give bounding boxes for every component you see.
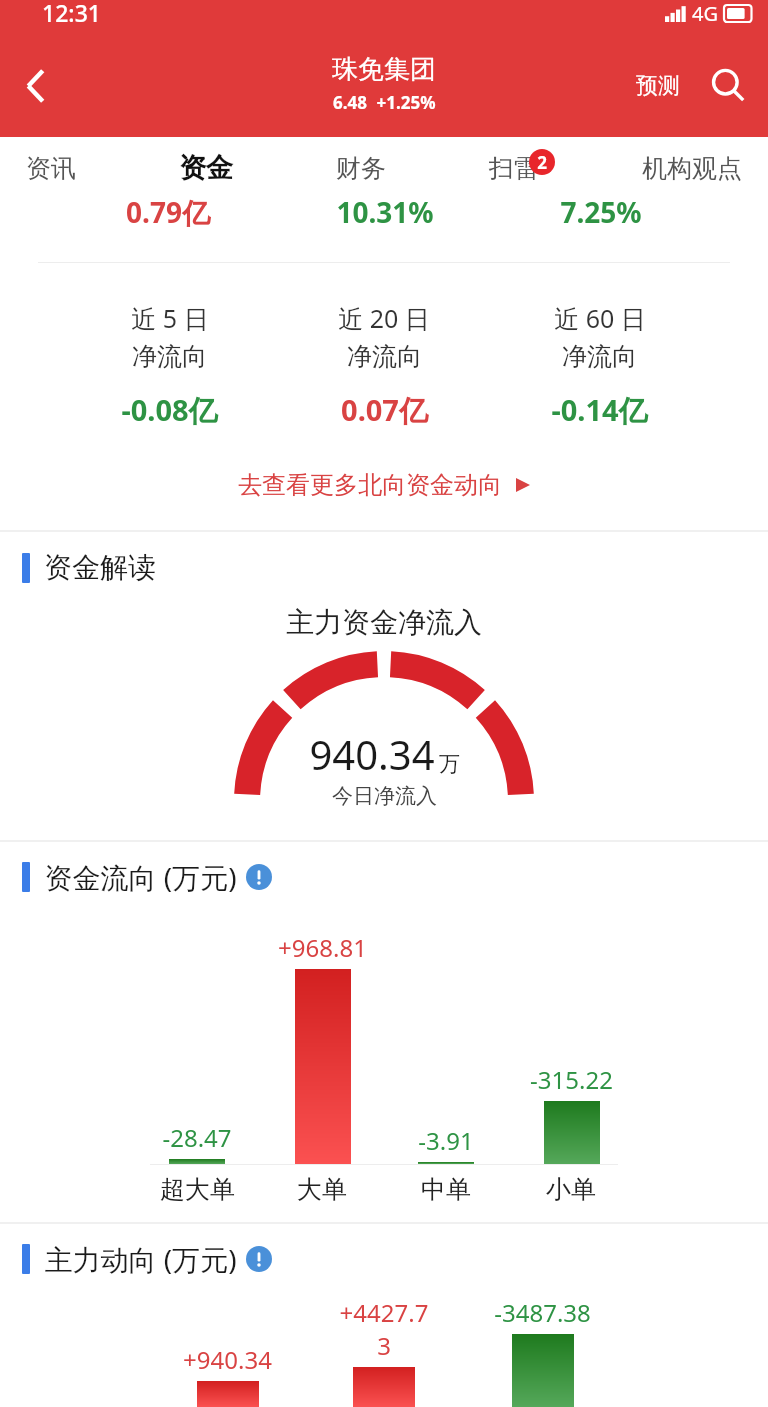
staticText: +968.81	[278, 931, 367, 964]
button[interactable]: +940.34	[176, 1296, 278, 1407]
staticText: 0.07亿	[341, 390, 428, 430]
staticText: 今日净流入	[332, 783, 437, 809]
staticText: 6.48	[333, 91, 367, 114]
staticText: -0.08亿	[121, 390, 218, 430]
staticText: 近 20 日	[338, 301, 430, 335]
staticText: 小单	[546, 1174, 596, 1205]
staticText: 去查看更多北向资金动向	[238, 470, 502, 500]
staticText: 资金流向 (万元)	[44, 858, 237, 896]
staticText: 主力资金净流入	[286, 605, 482, 640]
staticText: 扫雷	[489, 153, 539, 184]
button[interactable]: Search	[698, 56, 758, 116]
button[interactable]: -3487.38	[491, 1296, 593, 1407]
staticText: 近 60 日	[554, 301, 646, 335]
button[interactable]: 预测	[628, 62, 688, 110]
staticText: 940.34	[309, 727, 435, 781]
button[interactable]: Info	[246, 1246, 272, 1272]
staticText: 12:31	[42, 0, 101, 28]
button[interactable]: 机构观点	[628, 139, 756, 198]
staticText: 净流向	[347, 341, 422, 372]
staticText: -3.91	[418, 1124, 474, 1157]
staticText: 资讯	[26, 153, 76, 184]
button[interactable]: 财务	[322, 139, 400, 198]
staticText: 10.31%	[336, 193, 434, 231]
button[interactable]: 资讯	[12, 139, 90, 198]
staticText: 净流向	[132, 341, 207, 372]
staticText: 2	[537, 151, 547, 174]
button[interactable]: Info	[246, 864, 272, 890]
staticText: 近 5 日	[131, 301, 209, 335]
staticText: 预测	[636, 72, 680, 100]
button[interactable]: 资金	[165, 137, 247, 199]
button[interactable]: +4427.73	[333, 1296, 435, 1407]
button[interactable]: -3.91	[398, 914, 494, 1205]
staticText: 资金解读	[44, 550, 156, 585]
staticText: +940.34	[183, 1343, 272, 1376]
staticText: 大单	[297, 1174, 347, 1205]
staticText: 万	[439, 751, 460, 777]
staticText: +4427.73	[333, 1296, 435, 1362]
button[interactable]: -28.47	[149, 914, 245, 1205]
button[interactable]: Back	[0, 50, 72, 122]
staticText: -3487.38	[494, 1296, 591, 1329]
staticText: -0.14亿	[551, 390, 648, 430]
button[interactable]: 去查看更多北向资金动向	[0, 464, 768, 506]
staticText: -28.47	[162, 1121, 232, 1154]
staticText: 珠免集团	[332, 53, 436, 86]
staticText: 超大单	[160, 1174, 235, 1205]
staticText: 4G	[692, 0, 718, 27]
staticText: 净流向	[562, 341, 637, 372]
staticText: 主力动向 (万元)	[44, 1240, 237, 1278]
staticText: 中单	[421, 1174, 471, 1205]
staticText: +1.25%	[376, 91, 436, 114]
button[interactable]: +968.81	[274, 914, 370, 1205]
staticText: -315.22	[530, 1063, 613, 1096]
staticText: 财务	[336, 153, 386, 184]
staticText: 7.25%	[560, 193, 642, 231]
staticText: 0.79亿	[126, 193, 210, 231]
button[interactable]: 扫雷	[475, 139, 553, 198]
staticText: 机构观点	[642, 153, 742, 184]
staticText: 资金	[179, 151, 233, 185]
button[interactable]: -315.22	[523, 914, 619, 1205]
